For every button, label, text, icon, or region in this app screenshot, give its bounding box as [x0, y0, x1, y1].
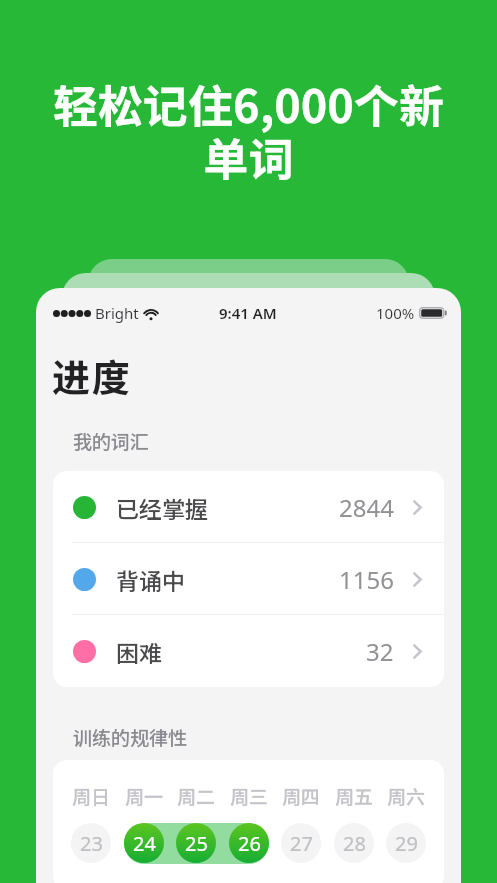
button[interactable]: 困难	[53, 615, 444, 687]
staticText: 2844	[339, 491, 394, 524]
button[interactable]: 24	[124, 823, 164, 863]
staticText: 100%	[376, 303, 415, 323]
staticText: 进度	[52, 348, 133, 403]
staticText: 25	[185, 830, 208, 857]
staticText: 周三	[230, 782, 269, 810]
staticText: 周日	[72, 782, 111, 810]
staticText: 周一	[125, 782, 164, 810]
button[interactable]: 26	[229, 823, 269, 863]
staticText: 周二	[177, 782, 216, 810]
button[interactable]: 25	[176, 823, 216, 863]
staticText: 背诵中	[116, 563, 185, 596]
staticText: 轻松记住6,000个新 单词	[53, 71, 444, 189]
staticText: 24	[133, 830, 156, 857]
staticText: 1156	[339, 563, 394, 596]
staticText: 已经掌握	[116, 491, 208, 524]
staticText: 26	[238, 830, 261, 857]
staticText: 23	[80, 830, 103, 857]
staticText: 训练的规律性	[73, 723, 188, 751]
staticText: 29	[395, 830, 418, 857]
button[interactable]: 23	[71, 823, 111, 863]
button[interactable]: 29	[386, 823, 426, 863]
staticText: Bright	[95, 303, 139, 323]
staticText: 9:41 AM	[219, 303, 277, 323]
button[interactable]: 已经掌握	[53, 471, 444, 543]
staticText: 周六	[387, 782, 426, 810]
staticText: 我的词汇	[73, 427, 150, 455]
staticText: 困难	[116, 635, 162, 668]
staticText: 27	[290, 830, 313, 857]
staticText: 周五	[335, 782, 374, 810]
staticText: 28	[343, 830, 366, 857]
staticText: 32	[366, 635, 394, 668]
button[interactable]: 28	[334, 823, 374, 863]
button[interactable]: 背诵中	[53, 543, 444, 615]
staticText: 周四	[282, 782, 321, 810]
button[interactable]: 27	[281, 823, 321, 863]
